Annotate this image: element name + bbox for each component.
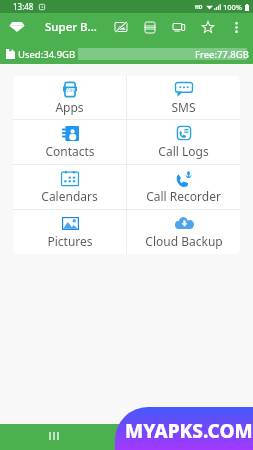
button[interactable]: Pictures <box>13 210 126 254</box>
staticText: Free:77.8GB <box>195 48 249 60</box>
staticText: 13:48 <box>13 1 34 12</box>
staticText: Call Logs <box>158 143 209 159</box>
staticText: SMS <box>171 99 196 115</box>
staticText: HD <box>195 4 203 11</box>
button[interactable]: Favorites <box>193 13 222 41</box>
button[interactable]: Contacts <box>13 120 126 164</box>
staticText: 100% <box>223 2 243 12</box>
button[interactable]: APP <box>13 76 126 119</box>
button[interactable]: Recent apps <box>49 432 59 440</box>
staticText: Cloud Backup <box>145 233 223 249</box>
staticText: Used:34.9GB <box>18 48 76 60</box>
staticText: Apps <box>55 99 84 115</box>
button[interactable]: Hide images <box>106 13 135 41</box>
staticText: Super B... <box>45 19 97 35</box>
button[interactable]: Call Recorder <box>127 165 240 209</box>
button[interactable]: Notes <box>135 13 164 41</box>
button[interactable]: Cloud Backup <box>127 210 240 254</box>
button[interactable]: App logo <box>0 13 34 41</box>
button[interactable]: SMS <box>127 76 240 119</box>
staticText: Calendars <box>41 188 98 204</box>
button[interactable]: Call Logs <box>127 120 240 164</box>
staticText: Contacts <box>45 143 95 159</box>
button[interactable]: Calendars <box>13 165 126 209</box>
staticText: Call Recorder <box>146 188 221 204</box>
staticText: Pictures <box>47 233 93 249</box>
staticText: MYAPKS.COM <box>125 418 253 444</box>
button[interactable]: Devices <box>164 13 193 41</box>
staticText: APP <box>66 87 75 93</box>
button[interactable]: More options <box>222 13 251 41</box>
